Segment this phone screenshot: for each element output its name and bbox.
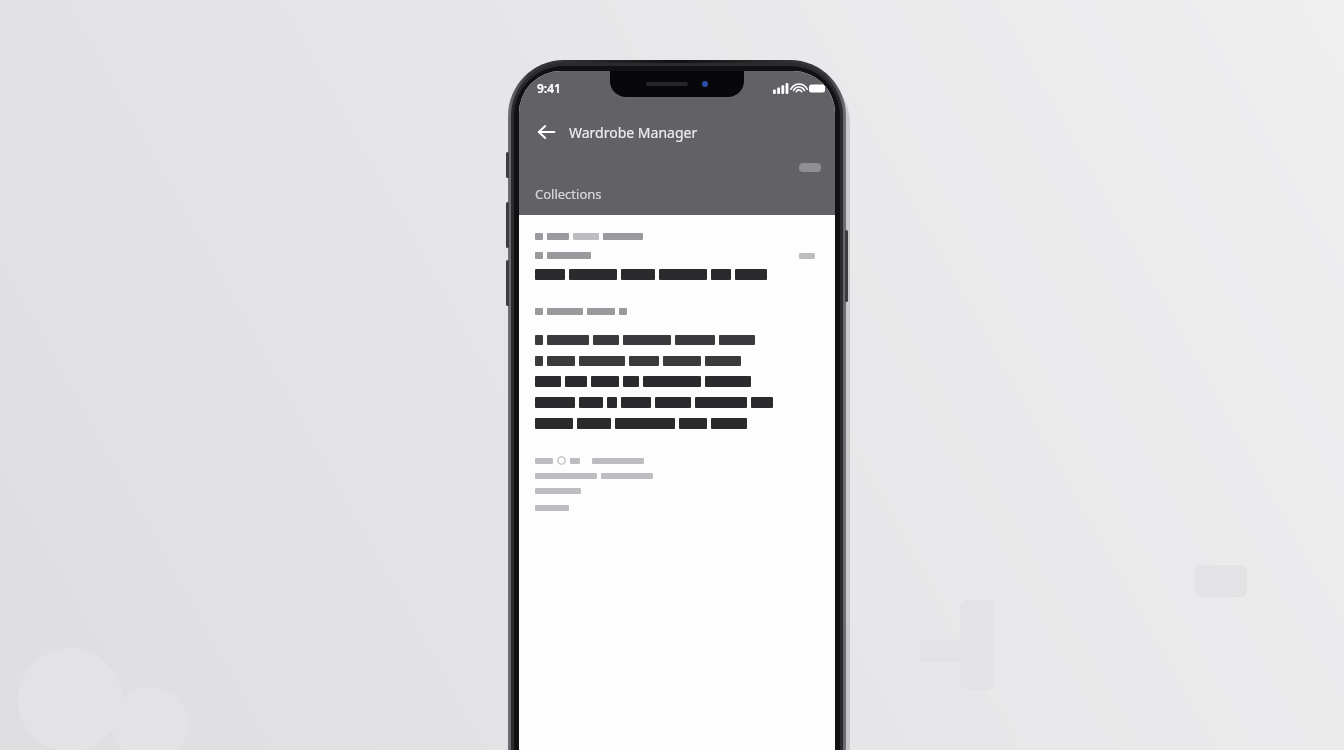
- staticText: 9:41: [537, 80, 561, 96]
- button[interactable]: Menu: [799, 163, 821, 172]
- staticText: Wardrobe Manager: [569, 123, 698, 142]
- button[interactable]: Back: [527, 113, 565, 151]
- staticText: Collections: [535, 185, 602, 203]
